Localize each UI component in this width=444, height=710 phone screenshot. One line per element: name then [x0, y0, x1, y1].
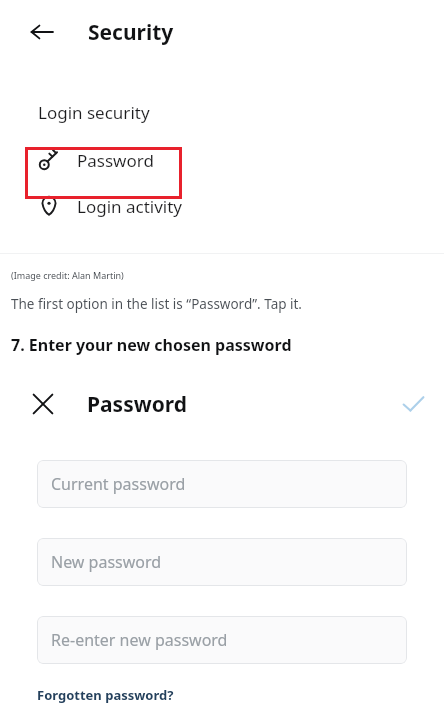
- button[interactable]: Current password: [37, 460, 407, 508]
- button[interactable]: Confirm: [394, 385, 432, 423]
- button[interactable]: Login activity: [0, 183, 444, 229]
- staticText: Login activity: [77, 195, 183, 218]
- button[interactable]: Forgotten password?: [37, 686, 174, 704]
- button[interactable]: Password: [0, 137, 444, 183]
- staticText: New password: [51, 551, 162, 573]
- button[interactable]: Close: [26, 387, 60, 421]
- staticText: (Image credit: Alan Martin): [11, 269, 124, 281]
- staticText: Security: [88, 18, 174, 47]
- button[interactable]: New password: [37, 538, 407, 586]
- staticText: Password: [87, 390, 188, 419]
- staticText: Password: [77, 149, 154, 172]
- staticText: The first option in the list is “Passwor…: [11, 295, 302, 313]
- staticText: Re-enter new password: [51, 629, 228, 651]
- button[interactable]: Re-enter new password: [37, 616, 407, 664]
- staticText: Current password: [51, 473, 186, 495]
- staticText: 7. Enter your new chosen password: [11, 334, 292, 356]
- button[interactable]: Back: [26, 16, 58, 48]
- staticText: Login security: [38, 101, 150, 124]
